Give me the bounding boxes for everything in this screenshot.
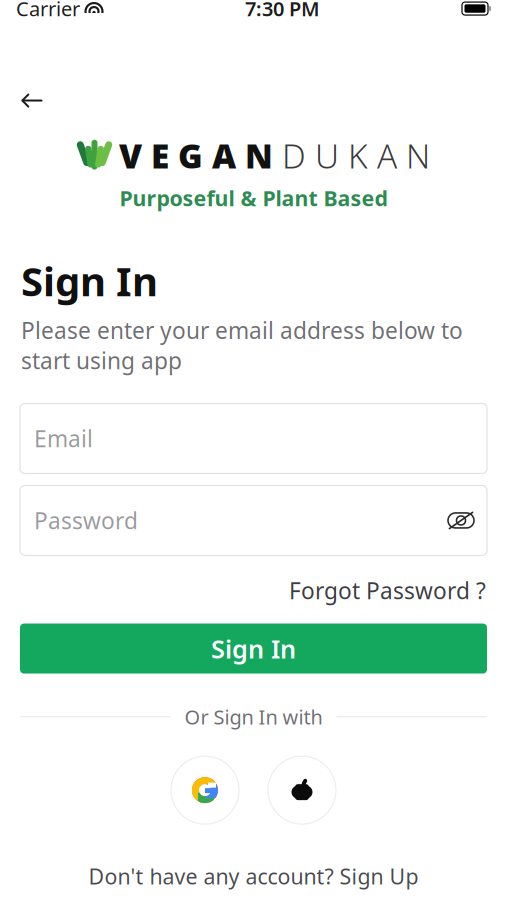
button[interactable]: Sign In [20,624,487,674]
staticText: V E G A N [119,133,273,178]
staticText: Email [34,423,93,453]
button[interactable]: Show password [441,500,481,540]
button[interactable]: Don't have any account? Sign Up [76,854,430,898]
staticText: Carrier [16,0,80,22]
staticText: Don't have any account? Sign Up [88,862,418,890]
staticText: Sign In [211,632,296,665]
button[interactable]: Sign in with Google [171,756,239,824]
staticText: D U K A N [273,133,430,178]
button[interactable]: Back [10,81,54,119]
staticText: Purposeful & Plant Based [119,184,387,212]
staticText: 7:30 PM [245,0,320,22]
staticText: Forgot Password ? [289,575,486,606]
button[interactable]: Forgot Password ? [289,569,486,612]
staticText: Sign In [21,254,158,307]
staticText: Password [34,505,138,535]
staticText: Please enter your email address below to… [21,315,463,375]
staticText: Or Sign In with [184,704,322,730]
button[interactable]: Sign in with Apple [268,756,336,824]
